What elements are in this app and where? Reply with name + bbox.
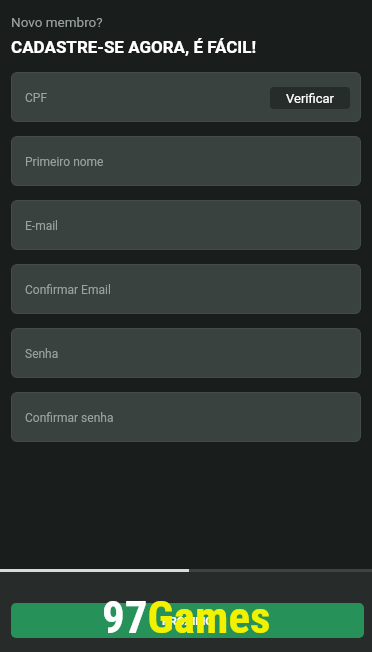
button[interactable]: Primeiro nome xyxy=(11,136,361,186)
staticText: Confirmar Email xyxy=(25,283,111,297)
staticText: 97Games xyxy=(102,591,271,644)
button[interactable]: CPF xyxy=(11,72,361,122)
staticText: Confirmar senha xyxy=(25,411,114,425)
button[interactable]: E-mail xyxy=(11,200,361,250)
button[interactable]: Verificar xyxy=(270,87,350,109)
staticText: CPF xyxy=(25,91,48,105)
staticText: Primeiro nome xyxy=(25,155,104,169)
staticText: Senha xyxy=(25,347,59,361)
staticText: Novo membro? xyxy=(11,14,103,30)
staticText: PRÓXIMO xyxy=(162,614,214,627)
button[interactable]: Senha xyxy=(11,328,361,378)
button[interactable]: Confirmar Email xyxy=(11,264,361,314)
button[interactable]: PRÓXIMO xyxy=(11,603,364,638)
staticText: Verificar xyxy=(286,91,334,106)
staticText: E-mail xyxy=(25,219,59,233)
staticText: CADASTRE-SE AGORA, É FÁCIL! xyxy=(11,37,257,57)
button[interactable]: Confirmar senha xyxy=(11,392,361,442)
